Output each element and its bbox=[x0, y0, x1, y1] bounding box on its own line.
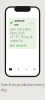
staticText: Tomorrow bbox=[14, 19, 25, 26]
button[interactable]: Trends bbox=[15, 67, 23, 72]
staticText: of 18°. Bring an umbrella. bbox=[10, 36, 33, 43]
staticText: Rain likely after 4pm, high bbox=[10, 28, 31, 35]
button[interactable]: Alerts bbox=[22, 67, 30, 72]
button[interactable]: See details bbox=[10, 44, 26, 48]
staticText: 9:41 bbox=[28, 21, 35, 25]
button[interactable]: Home bbox=[7, 67, 15, 72]
button[interactable]: Settings bbox=[30, 67, 38, 72]
staticText: One free prediction every day. bbox=[0, 82, 44, 92]
staticText: See details bbox=[10, 44, 26, 48]
